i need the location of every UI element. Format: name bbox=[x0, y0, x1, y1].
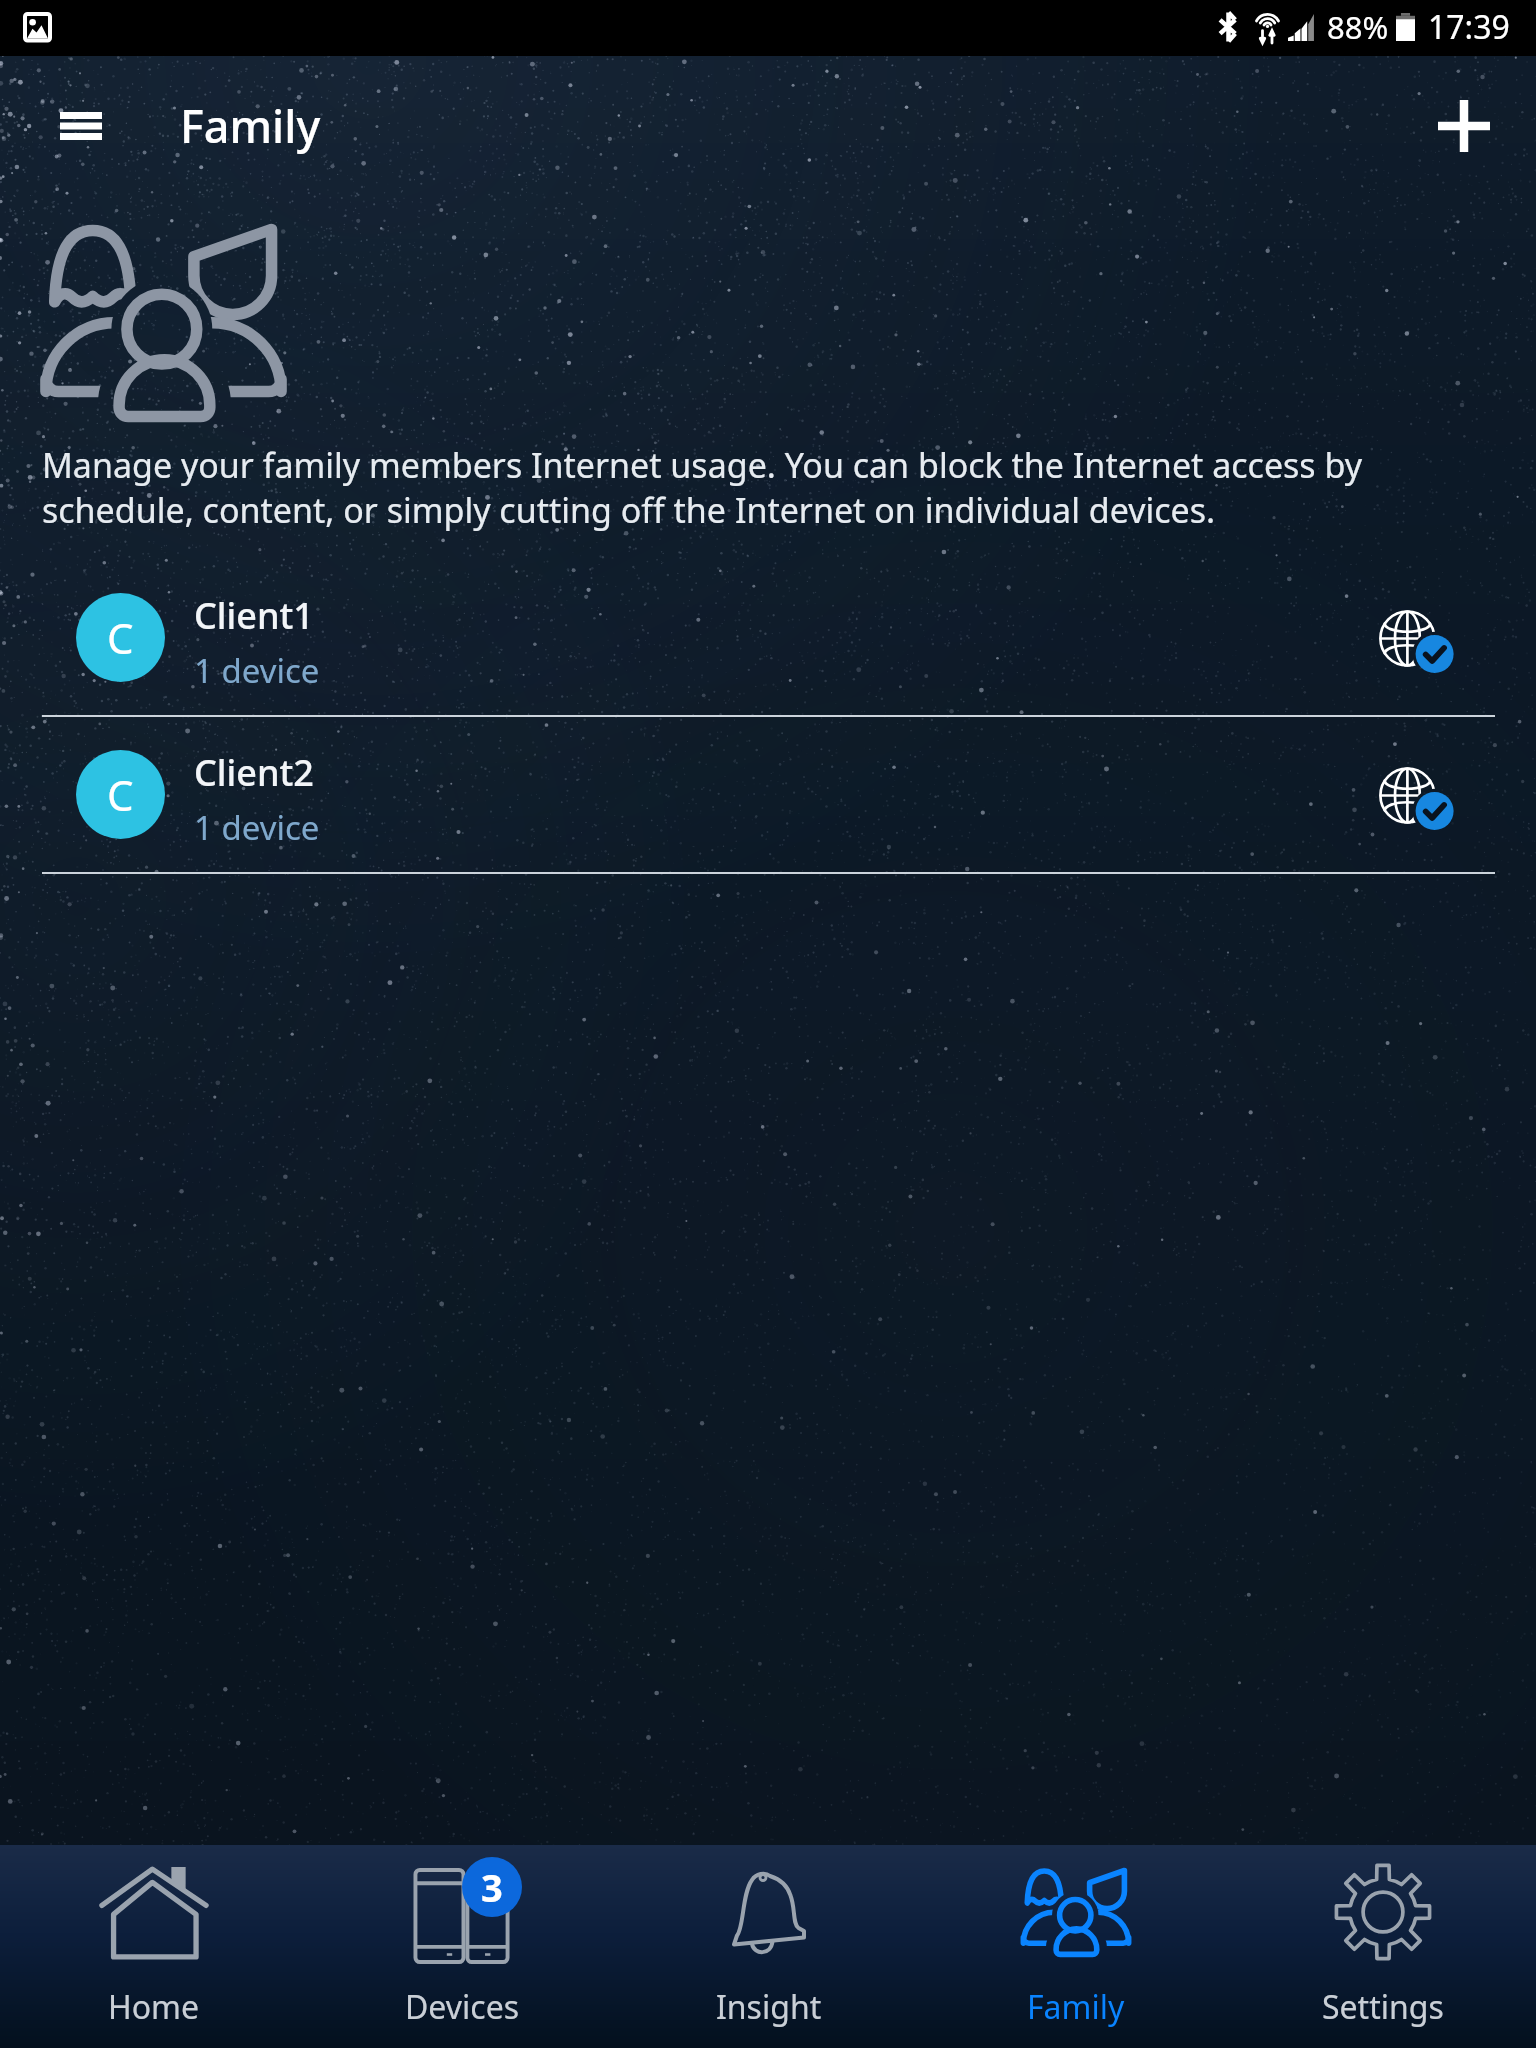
button[interactable]: Settings bbox=[1229, 1845, 1536, 2048]
staticText: Settings bbox=[1322, 1985, 1444, 2029]
staticText: 88% bbox=[1327, 6, 1389, 48]
staticText: Insight bbox=[716, 1985, 822, 2029]
button[interactable]: Internet access allowed bbox=[1379, 590, 1495, 686]
staticText: Family bbox=[180, 95, 321, 156]
button[interactable]: Internet access allowed bbox=[1379, 747, 1495, 843]
button[interactable]: Open navigation menu bbox=[33, 78, 129, 174]
button[interactable]: C bbox=[0, 717, 1536, 874]
staticText: Manage your family members Internet usag… bbox=[42, 442, 1416, 532]
staticText: C bbox=[107, 766, 134, 823]
staticText: C bbox=[107, 609, 134, 666]
button[interactable]: Home bbox=[0, 1845, 308, 2048]
button[interactable]: Family bbox=[922, 1845, 1229, 2048]
staticText: Home bbox=[108, 1985, 200, 2029]
button[interactable]: Add family member bbox=[1416, 78, 1512, 174]
button[interactable]: 3 bbox=[308, 1845, 615, 2048]
staticText: 1 device bbox=[194, 805, 320, 850]
staticText: 17:39 bbox=[1428, 5, 1510, 49]
staticText: Client1 bbox=[194, 591, 314, 640]
staticText: Devices bbox=[405, 1985, 520, 2029]
button[interactable]: Insight bbox=[615, 1845, 922, 2048]
staticText: 1 device bbox=[194, 648, 320, 693]
button[interactable]: C bbox=[0, 560, 1536, 717]
staticText: Client2 bbox=[194, 748, 314, 797]
staticText: Family bbox=[1027, 1985, 1125, 2029]
staticText: 3 bbox=[481, 1861, 503, 1913]
